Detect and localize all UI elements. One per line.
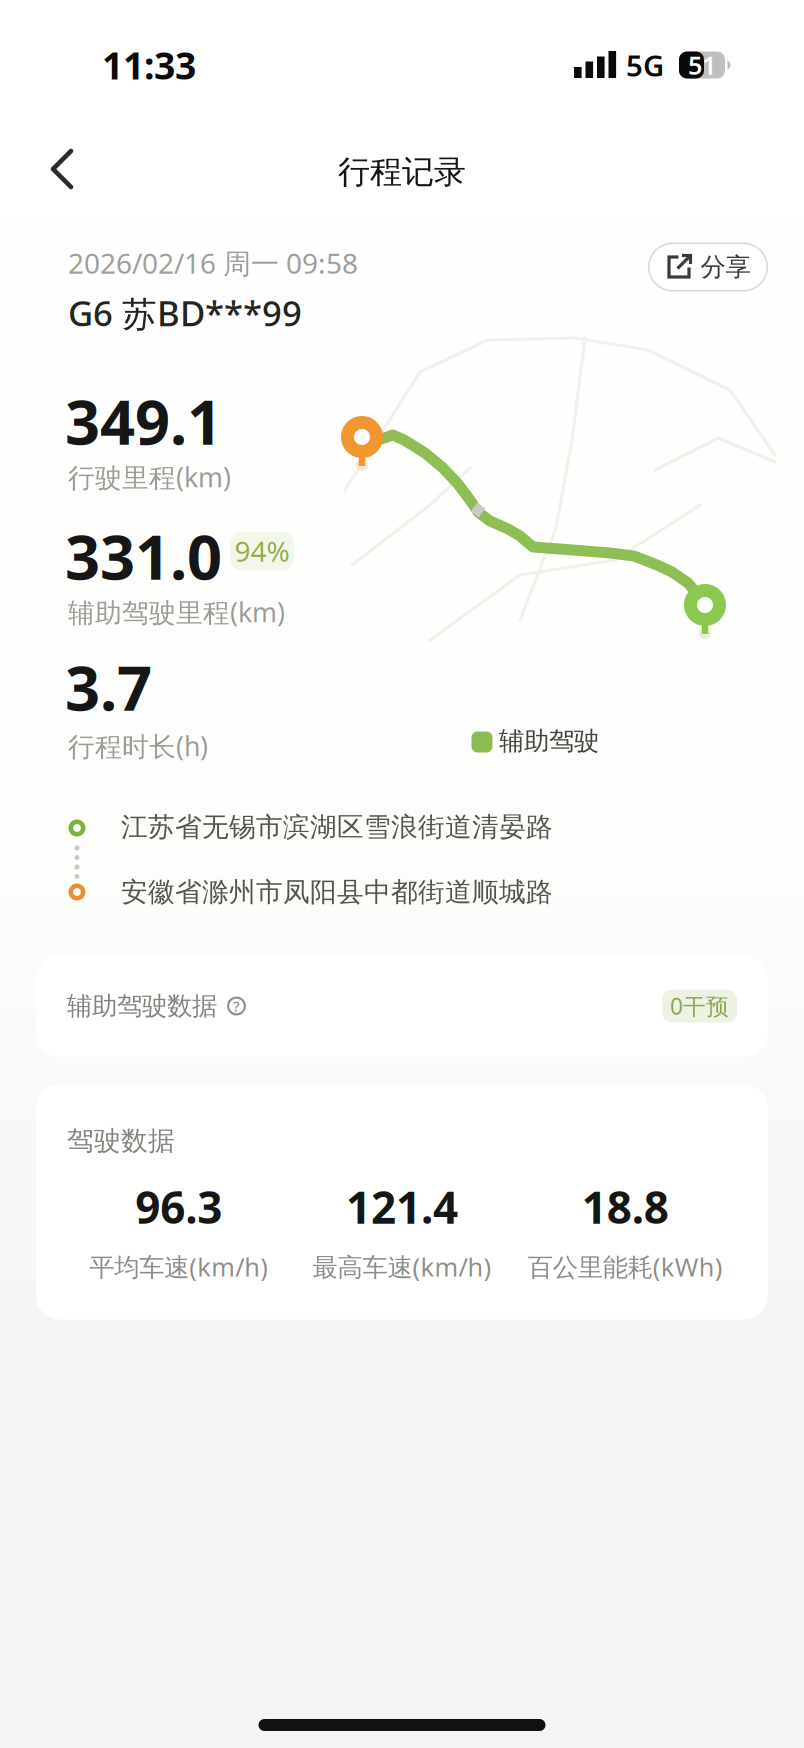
staticText: 平均车速(km/h) [89,1250,268,1283]
staticText: 分享 [700,251,750,282]
button[interactable]: Back [15,127,103,211]
staticText: 辅助驾驶里程(km) [68,594,285,630]
staticText: 辅助驾驶 [499,725,599,756]
staticText: 5G [626,45,664,84]
staticText: 江苏省无锡市滨湖区雪浪街道清晏路 [121,811,553,843]
staticText: 3.7 [65,646,152,728]
staticText: 辅助驾驶数据 [67,990,217,1021]
staticText: 0干预 [670,991,729,1021]
staticText: G6 苏BD***99 [68,290,302,336]
staticText: 行程时长(h) [68,728,208,764]
staticText: ? [233,996,240,1016]
staticText: 驾驶数据 [67,1125,175,1157]
button[interactable]: 分享 [648,242,768,291]
button[interactable]: 辅助驾驶数据 [36,955,768,1057]
staticText: 349.1 [65,380,222,462]
staticText: 11:33 [102,40,196,90]
staticText: 18.8 [582,1177,669,1236]
staticText: 121.4 [346,1177,458,1236]
staticText: 行程记录 [338,152,466,192]
staticText: 2026/02/16 周一 09:58 [68,244,358,282]
staticText: 96.3 [135,1177,222,1236]
staticText: 331.0 [65,515,222,597]
staticText: 百公里能耗(kWh) [528,1250,723,1283]
staticText: 94% [234,532,289,570]
staticText: 最高车速(km/h) [312,1250,491,1283]
staticText: 51 [688,48,716,82]
staticText: 行驶里程(km) [68,459,231,495]
staticText: 安徽省滁州市凤阳县中都街道顺城路 [121,876,553,908]
